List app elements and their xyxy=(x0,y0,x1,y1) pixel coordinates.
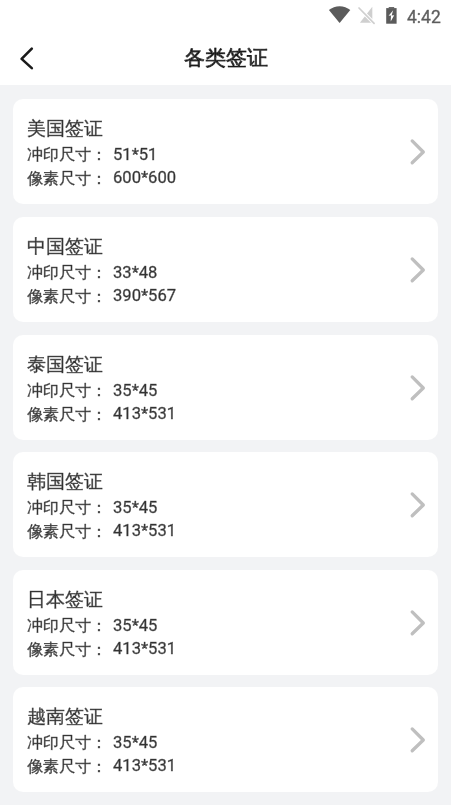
staticText: 冲印尺寸： xyxy=(27,145,107,165)
button[interactable]: Back xyxy=(3,34,51,82)
staticText: 冲印尺寸： xyxy=(27,263,107,283)
staticText: 35*45 xyxy=(113,733,158,752)
staticText: 泰国签证 xyxy=(27,353,103,377)
staticText: 美国签证 xyxy=(27,117,103,141)
staticText: 像素尺寸： xyxy=(27,757,107,777)
staticText: 413*531 xyxy=(113,521,177,540)
staticText: 4:42 xyxy=(407,7,441,28)
staticText: 韩国签证 xyxy=(27,470,103,494)
staticText: 冲印尺寸： xyxy=(27,733,107,753)
button[interactable]: 韩国签证 xyxy=(13,452,438,557)
staticText: 像素尺寸： xyxy=(27,640,107,660)
staticText: 413*531 xyxy=(113,639,177,658)
staticText: 413*531 xyxy=(113,639,177,658)
staticText: 413*531 xyxy=(113,756,177,775)
button[interactable]: 美国签证 xyxy=(13,99,438,204)
button[interactable]: 中国签证 xyxy=(13,217,438,322)
staticText: 51*51 xyxy=(113,145,158,164)
staticText: 35*45 xyxy=(113,381,158,400)
staticText: 冲印尺寸： xyxy=(27,733,107,753)
staticText: 像素尺寸： xyxy=(27,757,107,777)
staticText: 4:42 xyxy=(407,7,441,28)
staticText: 像素尺寸： xyxy=(27,287,107,307)
staticText: 35*45 xyxy=(113,498,158,517)
staticText: 35*45 xyxy=(113,381,158,400)
staticText: 413*531 xyxy=(113,404,177,423)
staticText: 各类签证 xyxy=(184,45,268,71)
staticText: 413*531 xyxy=(113,521,177,540)
staticText: 日本签证 xyxy=(27,588,103,612)
staticText: 像素尺寸： xyxy=(27,640,107,660)
staticText: 35*45 xyxy=(113,616,158,635)
staticText: 像素尺寸： xyxy=(27,405,107,425)
staticText: 泰国签证 xyxy=(27,353,103,377)
staticText: 像素尺寸： xyxy=(27,169,107,189)
button[interactable]: 越南签证 xyxy=(13,687,438,792)
staticText: 冲印尺寸： xyxy=(27,263,107,283)
staticText: 像素尺寸： xyxy=(27,287,107,307)
staticText: 美国签证 xyxy=(27,117,103,141)
staticText: 冲印尺寸： xyxy=(27,616,107,636)
staticText: 33*48 xyxy=(113,263,158,282)
staticText: 600*600 xyxy=(113,168,177,187)
staticText: 35*45 xyxy=(113,733,158,752)
staticText: 413*531 xyxy=(113,404,177,423)
staticText: 中国签证 xyxy=(27,235,103,259)
staticText: 越南签证 xyxy=(27,705,103,729)
staticText: 像素尺寸： xyxy=(27,522,107,542)
staticText: 390*567 xyxy=(113,286,177,305)
staticText: 冲印尺寸： xyxy=(27,498,107,518)
staticText: 像素尺寸： xyxy=(27,522,107,542)
staticText: 冲印尺寸： xyxy=(27,616,107,636)
button[interactable]: 日本签证 xyxy=(13,570,438,675)
staticText: 35*45 xyxy=(113,616,158,635)
staticText: 中国签证 xyxy=(27,235,103,259)
staticText: 390*567 xyxy=(113,286,177,305)
staticText: 韩国签证 xyxy=(27,470,103,494)
staticText: 600*600 xyxy=(113,168,177,187)
staticText: 51*51 xyxy=(113,145,158,164)
staticText: 冲印尺寸： xyxy=(27,145,107,165)
staticText: 越南签证 xyxy=(27,705,103,729)
staticText: 33*48 xyxy=(113,263,158,282)
staticText: 35*45 xyxy=(113,498,158,517)
staticText: 冲印尺寸： xyxy=(27,381,107,401)
staticText: 像素尺寸： xyxy=(27,405,107,425)
staticText: 冲印尺寸： xyxy=(27,381,107,401)
button[interactable]: 泰国签证 xyxy=(13,335,438,440)
staticText: 各类签证 xyxy=(184,45,268,71)
staticText: 像素尺寸： xyxy=(27,169,107,189)
staticText: 日本签证 xyxy=(27,588,103,612)
staticText: 413*531 xyxy=(113,756,177,775)
staticText: 冲印尺寸： xyxy=(27,498,107,518)
